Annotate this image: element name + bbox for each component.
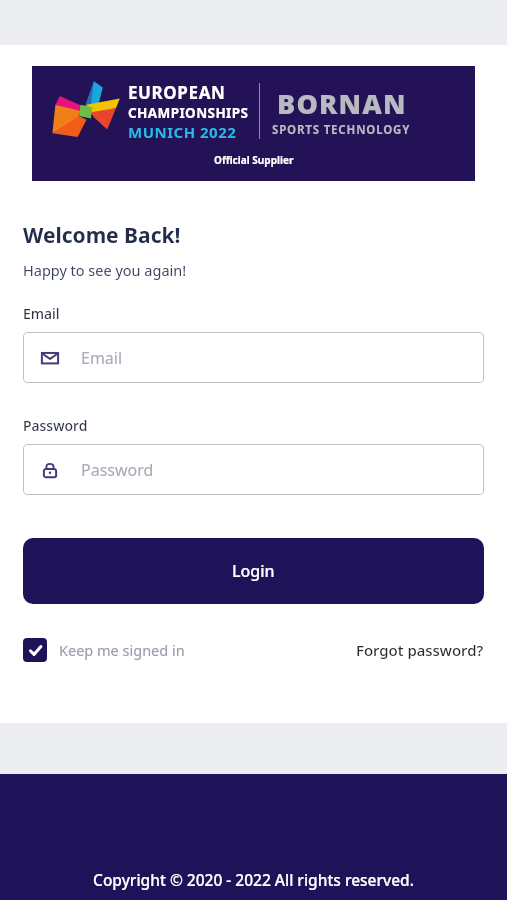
button[interactable]: Keep me signed in [23,638,185,662]
staticText: Forgot password? [356,640,484,660]
staticText: Email [81,347,123,369]
staticText: Password [23,416,88,435]
staticText: Login [232,560,275,582]
staticText: Keep me signed in [59,640,185,660]
staticText: Password [81,459,154,481]
staticText: Official Supplier [214,153,294,167]
staticText: EUROPEAN [128,81,226,104]
other: Email [40,348,60,368]
staticText: Email [23,304,60,323]
staticText: Copyright © 2020 - 2022 All rights reser… [0,869,507,890]
button[interactable]: Password [23,444,484,495]
staticText: BORNAN [277,85,407,122]
staticText: SPORTS TECHNOLOGY [272,122,411,138]
other: Password [40,460,60,480]
button[interactable]: Login [23,538,484,604]
button[interactable]: Email [23,332,484,383]
staticText: Welcome Back! [23,221,181,250]
staticText: Happy to see you again! [23,260,187,280]
button[interactable]: Forgot password? [356,640,484,660]
staticText: MUNICH 2022 [128,122,237,142]
staticText: CHAMPIONSHIPS [128,104,249,122]
